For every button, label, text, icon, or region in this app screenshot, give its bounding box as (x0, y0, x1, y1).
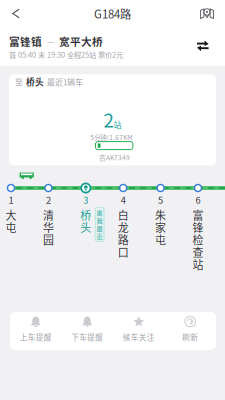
staticText: 锋 (192, 222, 203, 233)
staticText: 离 (97, 210, 103, 216)
staticText: 大 (5, 209, 16, 220)
button[interactable]: 1 (0, 194, 30, 276)
staticText: 屯 (5, 222, 16, 233)
staticText: 2 (46, 194, 51, 205)
staticText: 查 (192, 247, 203, 257)
staticText: 桥头 (26, 76, 44, 87)
staticText: 朱 (155, 209, 166, 220)
staticText: 园 (43, 234, 54, 245)
staticText: 富 (192, 209, 203, 220)
staticText: 路 (118, 234, 129, 245)
staticText: 最近1辆车 (47, 77, 83, 87)
staticText: 最 (97, 225, 103, 231)
staticText: 1 (8, 194, 13, 205)
staticText: 5分钟/1.67KM (90, 133, 132, 141)
button[interactable]: 刷新 (164, 312, 216, 350)
staticText: 4 (121, 194, 126, 205)
button[interactable]: 4 (104, 194, 142, 276)
staticText: 首 05:40 末 19:30 全程25站 票价2元 (9, 50, 123, 59)
staticText: 我 (97, 217, 103, 223)
button[interactable]: Swap direction (190, 34, 216, 58)
staticText: 家 (155, 222, 166, 233)
staticText: 下车提醒 (71, 332, 103, 342)
staticText: 屯 (155, 234, 166, 245)
staticText: 华 (43, 222, 54, 233)
button[interactable]: 3 (67, 194, 104, 276)
staticText: 桥 (80, 209, 91, 220)
button[interactable]: 2 (30, 194, 67, 276)
staticText: G184路 (94, 6, 131, 21)
button[interactable]: 上车提醒 (10, 312, 61, 350)
staticText: 至 (15, 77, 23, 87)
button[interactable]: 候车关注 (113, 312, 164, 350)
staticText: 3 (83, 194, 88, 205)
button[interactable]: Map view (190, 0, 224, 26)
staticText: 6 (195, 194, 200, 205)
staticText: 龙 (118, 222, 129, 233)
staticText: 上车提醒 (20, 332, 52, 342)
staticText: 5 (158, 194, 163, 205)
staticText: 宽平大桥 (59, 34, 103, 48)
staticText: — (47, 36, 54, 46)
staticText: 2 (103, 108, 113, 130)
staticText: 站 (192, 259, 203, 270)
staticText: 口 (118, 247, 129, 257)
button[interactable]: 5 (142, 194, 179, 276)
button[interactable]: Back (0, 0, 33, 26)
staticText: 富锋镇 (9, 34, 42, 48)
staticText: 候车关注 (123, 332, 155, 342)
staticText: 吉AK7349 (99, 153, 130, 162)
staticText: 白 (118, 209, 129, 220)
staticText: 近 (97, 233, 103, 239)
staticText: 清 (43, 209, 54, 220)
staticText: 检 (192, 234, 203, 245)
staticText: 刷新 (182, 332, 198, 342)
staticText: 头 (80, 222, 91, 233)
staticText: 站 (113, 120, 121, 129)
button[interactable]: 下车提醒 (61, 312, 113, 350)
button[interactable]: 6 (179, 194, 217, 276)
